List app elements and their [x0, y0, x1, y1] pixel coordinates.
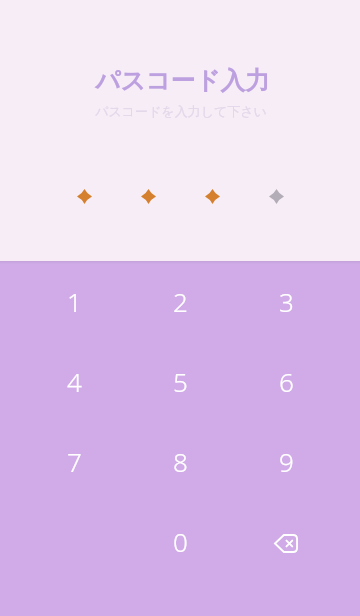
button[interactable]: 2	[127, 261, 233, 341]
staticText: 5	[173, 364, 188, 399]
button[interactable]: 9	[233, 421, 339, 501]
staticText: 6	[279, 364, 294, 399]
staticText: 7	[67, 444, 82, 479]
button[interactable]: 7	[21, 421, 127, 501]
button[interactable]: 5	[127, 341, 233, 421]
staticText: パスコードを入力して下さい	[95, 103, 267, 119]
button[interactable]: 6	[233, 341, 339, 421]
button[interactable]: 4	[21, 341, 127, 421]
staticText: 4	[67, 364, 82, 399]
button[interactable]: 8	[127, 421, 233, 501]
staticText: 1	[67, 284, 82, 319]
button[interactable]: Delete	[233, 501, 339, 581]
staticText: パスコード入力	[95, 65, 270, 96]
staticText: 9	[279, 444, 294, 479]
button[interactable]: 0	[127, 501, 233, 581]
staticText: 3	[279, 284, 294, 319]
staticText: 2	[173, 284, 188, 319]
staticText: 0	[173, 524, 188, 559]
button[interactable]: 1	[21, 261, 127, 341]
staticText: 8	[173, 444, 188, 479]
button[interactable]: 3	[233, 261, 339, 341]
